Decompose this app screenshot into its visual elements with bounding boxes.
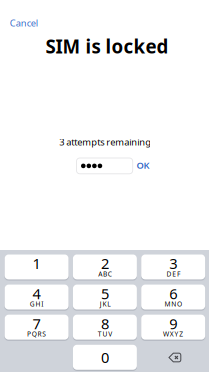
button[interactable]: 6 (141, 285, 205, 310)
staticText: JKL (100, 299, 110, 308)
staticText: WXYZ (163, 330, 183, 338)
staticText: 0 (101, 348, 109, 367)
staticText: ABC (98, 269, 112, 278)
button[interactable]: 5 (73, 285, 137, 310)
staticText: MNO (164, 299, 182, 308)
staticText: 3 attempts remaining (59, 136, 151, 148)
button[interactable]: Cancel (5, 12, 43, 34)
staticText: 3 (169, 254, 177, 273)
staticText: 5 (101, 284, 109, 303)
staticText: 8 (101, 314, 109, 333)
button[interactable]: 3 (141, 254, 205, 279)
staticText: PQRS (27, 330, 46, 338)
staticText: OK (136, 159, 149, 171)
button[interactable]: 9 (141, 315, 205, 340)
staticText: 1 (33, 254, 41, 273)
button[interactable]: 2 (73, 254, 137, 279)
staticText: 6 (169, 284, 177, 303)
staticText: 9 (169, 314, 177, 333)
button[interactable]: 4 (5, 285, 69, 310)
button[interactable]: 1 (5, 254, 69, 279)
staticText: 4 (33, 284, 41, 303)
button[interactable]: Delete (141, 345, 205, 370)
button[interactable]: 8 (73, 315, 137, 340)
staticText: Cancel (10, 17, 38, 29)
staticText: DEF (166, 269, 180, 278)
button[interactable]: 0 (73, 345, 137, 370)
staticText: GHI (30, 299, 43, 308)
staticText: SIM is locked (45, 34, 168, 59)
button[interactable]: OK (131, 154, 154, 176)
staticText: 7 (33, 314, 41, 333)
staticText: 2 (101, 254, 109, 273)
staticText: TUV (98, 330, 112, 338)
button[interactable]: 7 (5, 315, 69, 340)
